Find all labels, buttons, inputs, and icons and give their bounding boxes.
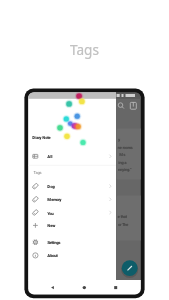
button[interactable]: Notebooks [128,99,140,112]
button[interactable]: About [28,249,116,262]
button[interactable]: New note [122,261,138,277]
button[interactable]: Dog [28,180,116,193]
button[interactable]: You [28,206,116,219]
button[interactable]: New [28,219,116,232]
button[interactable]: Back [46,281,64,294]
button[interactable]: Recent apps [107,281,125,294]
button[interactable]: Home [76,281,94,294]
button[interactable]: All [28,150,116,163]
button[interactable]: Search [116,99,128,112]
button[interactable]: Settings [28,236,116,249]
staticText: Tags [70,40,99,59]
button[interactable]: Memory [28,193,116,206]
